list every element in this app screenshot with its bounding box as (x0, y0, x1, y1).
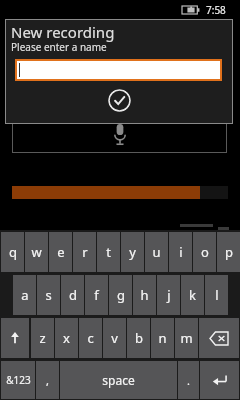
button[interactable]: q (1, 232, 24, 272)
staticText: i (179, 243, 183, 261)
button[interactable]: , (36, 361, 59, 399)
staticText: 7:58 (206, 3, 226, 17)
staticText: b (135, 329, 143, 347)
button[interactable]: c (79, 318, 102, 358)
button[interactable]: m (175, 318, 198, 358)
staticText: y (129, 243, 136, 261)
button[interactable]: y (121, 232, 144, 272)
staticText: w (31, 243, 42, 261)
button[interactable]: Backspace (199, 318, 239, 358)
staticText: q (9, 243, 17, 261)
button[interactable]: f (85, 275, 108, 315)
staticText: s (45, 286, 52, 304)
button[interactable]: i (169, 232, 192, 272)
button[interactable]: j (157, 275, 180, 315)
button[interactable]: . (178, 361, 199, 399)
staticText: &123 (6, 373, 31, 387)
staticText: u (152, 243, 161, 261)
button[interactable]: u (145, 232, 168, 272)
button[interactable]: t (97, 232, 120, 272)
staticText: d (69, 286, 77, 304)
button[interactable]: d (61, 275, 84, 315)
staticText: m (180, 329, 193, 347)
button[interactable]: h (133, 275, 156, 315)
button[interactable]: x (55, 318, 78, 358)
button[interactable]: Accept (108, 89, 131, 112)
button[interactable]: space (60, 361, 177, 399)
button[interactable]: e (49, 232, 72, 272)
staticText: h (140, 286, 149, 304)
button[interactable] (15, 59, 222, 81)
staticText: o (201, 243, 209, 261)
button[interactable]: g (109, 275, 132, 315)
staticText: New recording (11, 22, 115, 42)
staticText: j (167, 286, 171, 304)
button[interactable]: w (25, 232, 48, 272)
staticText: p (225, 243, 233, 261)
staticText: t (106, 243, 111, 261)
staticText: . (187, 373, 190, 388)
staticText: k (189, 286, 196, 304)
button[interactable]: o (193, 232, 216, 272)
staticText: f (94, 286, 99, 304)
button[interactable]: v (103, 318, 126, 358)
button[interactable]: &123 (1, 361, 35, 399)
button[interactable]: s (37, 275, 60, 315)
staticText: e (57, 243, 65, 261)
button[interactable]: k (181, 275, 204, 315)
staticText: Please enter a name (11, 40, 107, 54)
staticText: space (102, 372, 135, 388)
staticText: n (158, 329, 167, 347)
button[interactable]: Shift (1, 318, 29, 358)
button[interactable]: z (31, 318, 54, 358)
button[interactable]: n (151, 318, 174, 358)
staticText: c (87, 329, 94, 347)
staticText: , (46, 373, 49, 388)
staticText: a (21, 286, 29, 304)
staticText: r (82, 243, 88, 261)
staticText: v (111, 329, 118, 347)
staticText: l (215, 286, 219, 304)
button[interactable]: l (205, 275, 228, 315)
button[interactable]: p (217, 232, 240, 272)
button[interactable]: Enter (200, 361, 239, 399)
staticText: g (117, 286, 125, 304)
button[interactable]: b (127, 318, 150, 358)
button[interactable]: a (13, 275, 36, 315)
staticText: x (63, 329, 70, 347)
button[interactable]: r (73, 232, 96, 272)
staticText: z (39, 329, 46, 347)
